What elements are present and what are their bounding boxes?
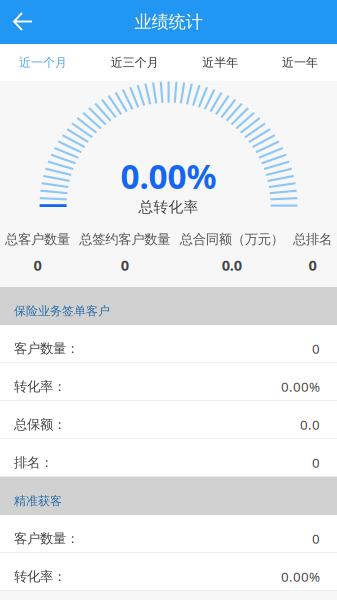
staticText: 0	[308, 255, 316, 275]
staticText: 0.00%	[281, 378, 320, 395]
staticText: 保险业务签单客户	[14, 304, 110, 318]
staticText: 0	[312, 454, 320, 471]
staticText: 近半年	[202, 55, 238, 70]
staticText: 近三个月	[111, 55, 159, 70]
staticText: 总签约客户数量	[79, 231, 170, 247]
staticText: 0.00%	[120, 154, 216, 198]
staticText: 总保额：	[14, 416, 66, 433]
staticText: 总客户数量	[5, 231, 70, 247]
staticText: 转化率：	[14, 378, 66, 395]
staticText: 客户数量：	[14, 340, 79, 357]
staticText: 0	[33, 255, 41, 275]
staticText: 总合同额（万元）	[180, 231, 284, 247]
staticText: 0.0	[222, 255, 242, 275]
staticText: 总转化率	[138, 198, 198, 216]
button[interactable]: 近一年	[282, 44, 318, 81]
staticText: 精准获客	[14, 494, 62, 508]
staticText: 业绩统计	[134, 11, 202, 33]
staticText: 0	[121, 255, 129, 275]
button[interactable]: 近三个月	[111, 44, 159, 81]
button[interactable]: 近半年	[202, 44, 238, 81]
staticText: 0	[312, 530, 320, 547]
staticText: 近一个月	[19, 55, 67, 70]
staticText: 0.00%	[281, 568, 320, 585]
staticText: 转化率：	[14, 568, 66, 585]
staticText: 客户数量：	[14, 530, 79, 547]
staticText: 排名：	[14, 454, 53, 471]
staticText: 总排名	[293, 231, 332, 247]
staticText: 0.0	[300, 416, 320, 433]
button[interactable]: 返回	[0, 0, 48, 44]
button[interactable]: 近一个月	[19, 44, 67, 81]
staticText: 近一年	[282, 55, 318, 70]
staticText: 0	[312, 340, 320, 357]
